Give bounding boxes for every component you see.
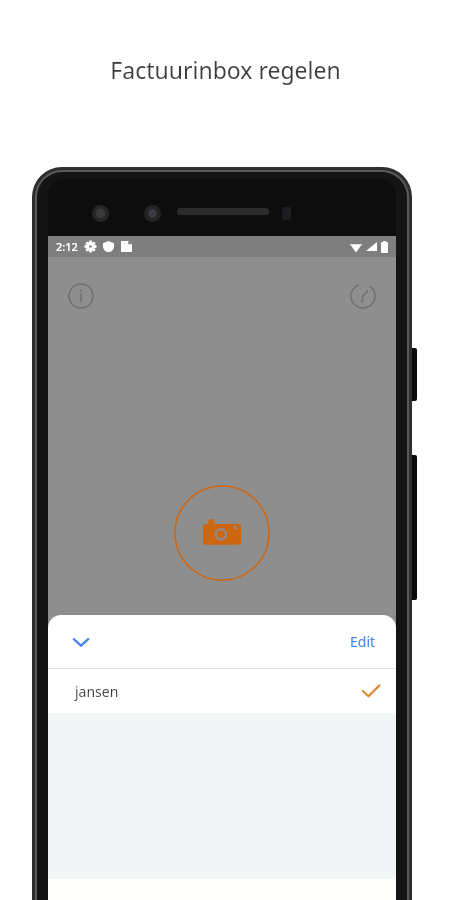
staticText: 2:12 — [56, 239, 78, 254]
button[interactable]: Information — [60, 275, 102, 317]
button[interactable]: Timer — [342, 275, 384, 317]
staticText: jansen — [75, 682, 119, 701]
button[interactable]: Edit — [346, 626, 380, 657]
button[interactable]: jansen — [48, 669, 396, 713]
staticText: Edit — [350, 632, 376, 651]
button[interactable]: Collapse — [62, 623, 100, 661]
button[interactable]: Take photo — [174, 485, 270, 581]
staticText: Factuurinbox regelen — [110, 54, 341, 85]
